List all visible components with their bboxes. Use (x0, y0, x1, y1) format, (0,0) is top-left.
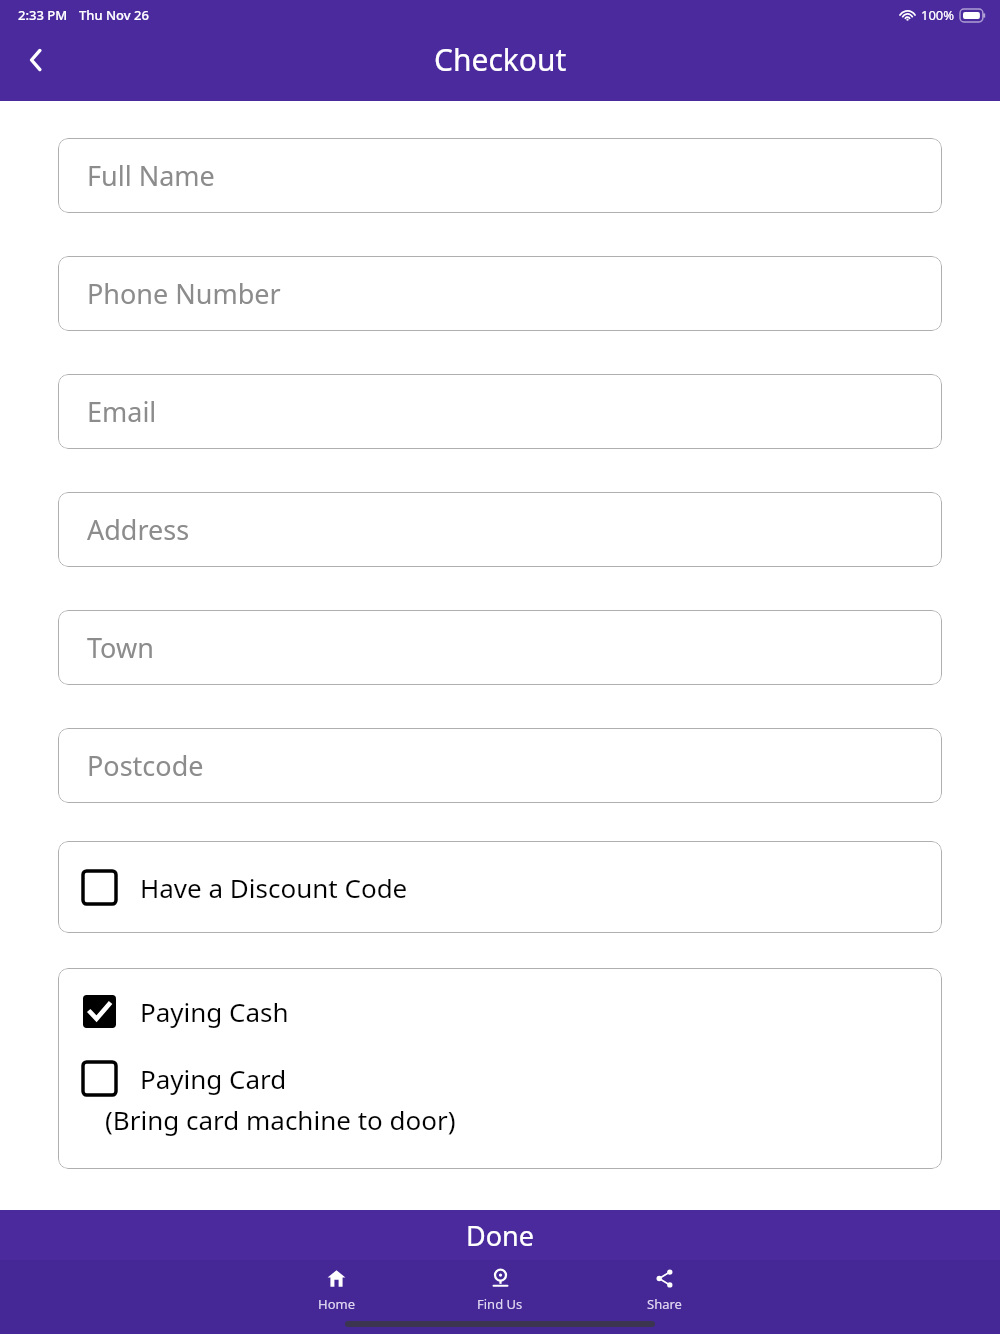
staticText: Have a Discount Code (140, 870, 408, 905)
staticText: 100% (921, 6, 955, 24)
staticText: Full Name (87, 157, 215, 194)
button[interactable]: Town (58, 610, 942, 685)
button[interactable]: Email (58, 374, 942, 449)
button[interactable]: Full Name (58, 138, 942, 213)
button[interactable]: Paying Card (58, 1061, 942, 1137)
button[interactable]: Back (8, 32, 64, 88)
staticText: 2:33 PM (18, 6, 68, 24)
button[interactable]: Find Us (418, 1260, 582, 1313)
staticText: Postcode (87, 747, 204, 784)
button[interactable]: Share (582, 1260, 746, 1313)
button[interactable]: Done (0, 1210, 1000, 1260)
button[interactable]: Have a Discount Code (58, 841, 942, 933)
staticText: Town (87, 629, 154, 666)
staticText: Thu Nov 26 (79, 6, 149, 24)
staticText: Email (87, 393, 157, 430)
button[interactable]: Home (254, 1260, 418, 1313)
staticText: Home (318, 1295, 355, 1313)
button[interactable]: Phone Number (58, 256, 942, 331)
button[interactable]: Paying Cash (58, 990, 942, 1033)
button[interactable]: Address (58, 492, 942, 567)
staticText: Share (647, 1295, 682, 1313)
button[interactable]: Postcode (58, 728, 942, 803)
staticText: Paying Cash (140, 994, 289, 1029)
staticText: (Bring card machine to door) (105, 1102, 456, 1137)
staticText: Find Us (477, 1295, 523, 1313)
staticText: Phone Number (87, 275, 281, 312)
staticText: Done (466, 1217, 534, 1254)
staticText: Address (87, 511, 190, 548)
staticText: Paying Card (140, 1061, 287, 1096)
staticText: Checkout (434, 39, 567, 80)
